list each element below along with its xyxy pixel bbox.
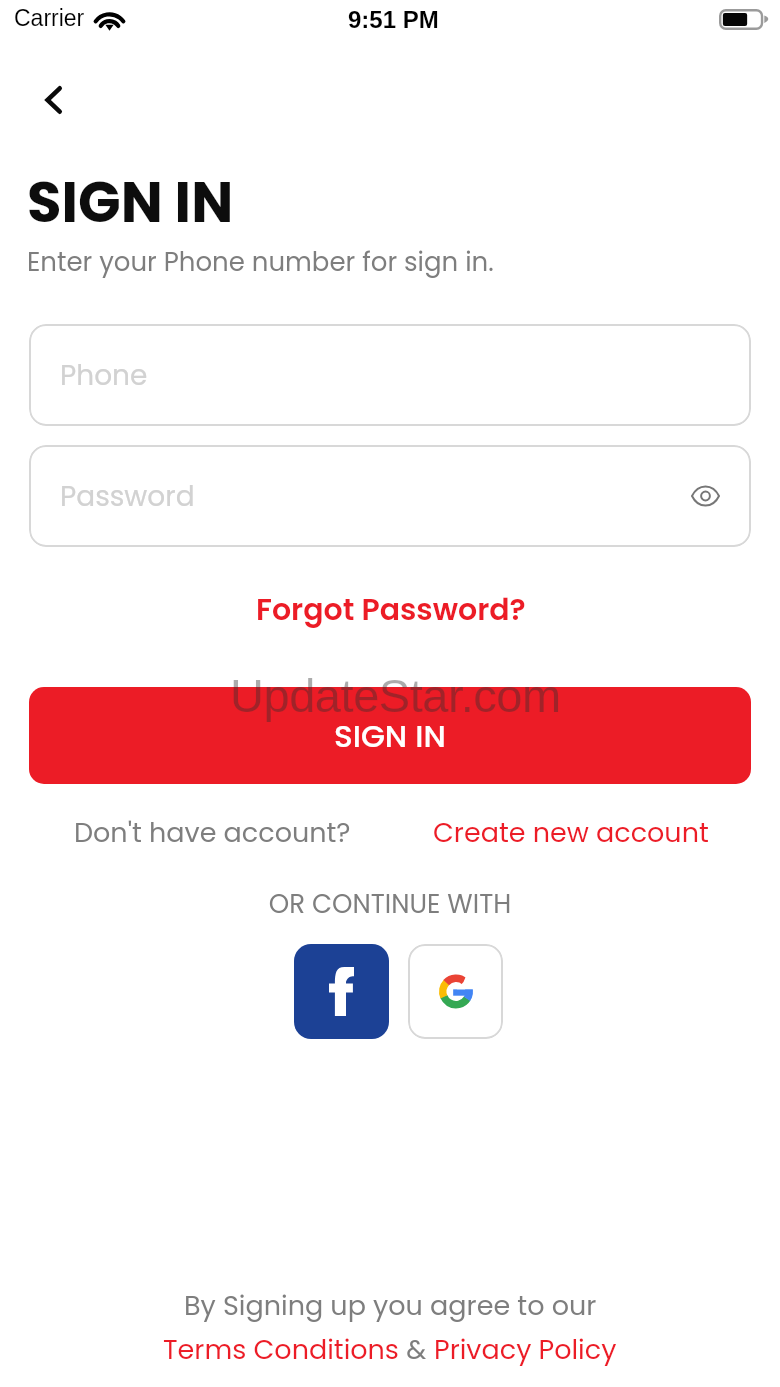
staticText: By Signing up you agree to our xyxy=(184,1287,597,1325)
staticText: SIGN IN xyxy=(334,714,446,757)
button[interactable]: Phone xyxy=(29,324,751,426)
staticText: SIGN IN xyxy=(27,163,234,241)
staticText: Enter your Phone number for sign in. xyxy=(27,244,494,280)
staticText: Carrier xyxy=(14,5,85,31)
staticText: Password xyxy=(60,477,195,516)
button[interactable]: SIGN IN xyxy=(29,687,751,784)
button[interactable]: Password xyxy=(29,445,751,547)
button[interactable]: Privacy Policy xyxy=(434,1331,617,1369)
staticText: Forgot Password? xyxy=(256,589,526,631)
staticText: OR CONTINUE WITH xyxy=(0,886,780,922)
staticText: 9:51 PM xyxy=(348,6,439,33)
button[interactable]: Terms Conditions xyxy=(163,1331,399,1369)
button[interactable]: Continue with Google xyxy=(408,944,503,1039)
staticText: Create new account xyxy=(433,814,709,852)
staticText: Privacy Policy xyxy=(434,1331,617,1369)
staticText: Terms Conditions xyxy=(163,1331,399,1369)
button[interactable]: Back xyxy=(17,64,89,136)
button[interactable]: Continue with Facebook xyxy=(294,944,389,1039)
staticText: Don't have account? xyxy=(74,814,351,852)
staticText: UpdateStar.com xyxy=(230,669,561,722)
button[interactable]: Create new account xyxy=(433,814,709,852)
button[interactable]: Forgot Password? xyxy=(256,586,526,634)
staticText: Phone xyxy=(60,356,148,395)
staticText: & xyxy=(399,1331,434,1369)
button[interactable]: Show password xyxy=(683,474,727,518)
